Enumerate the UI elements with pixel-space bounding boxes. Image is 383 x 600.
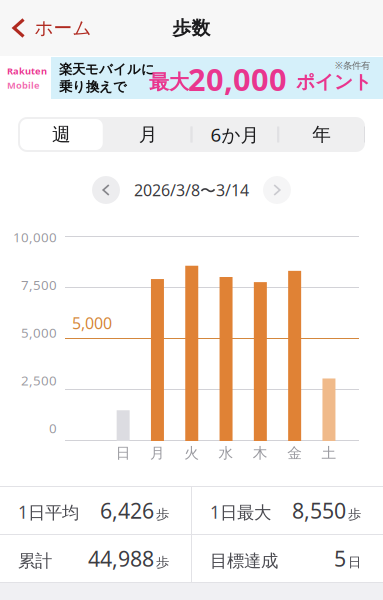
staticText: 20,000 <box>188 59 287 99</box>
button[interactable]: 累計 <box>0 535 191 582</box>
staticText: 水 <box>219 444 234 462</box>
staticText: 累計 <box>18 550 52 572</box>
staticText: 8,550 <box>292 496 346 525</box>
staticText: 月 <box>139 123 158 146</box>
staticText: ポイント <box>296 70 372 93</box>
button[interactable]: 年 <box>278 117 365 152</box>
staticText: Rakuten <box>7 65 47 77</box>
button[interactable]: 前の週 <box>92 176 120 204</box>
staticText: ※条件有 <box>335 59 370 71</box>
button[interactable]: 週 <box>18 117 105 152</box>
staticText: 歩 <box>156 506 169 522</box>
staticText: 木 <box>253 444 268 462</box>
staticText: 日 <box>348 554 361 570</box>
staticText: 5 <box>334 544 346 573</box>
staticText: 月 <box>150 444 165 462</box>
staticText: 6,426 <box>100 496 154 525</box>
staticText: 火 <box>184 444 199 462</box>
staticText: 5,000 <box>72 312 112 334</box>
staticText: 楽天モバイルに <box>59 61 155 77</box>
button[interactable]: ホーム <box>0 7 91 48</box>
staticText: Mobile <box>7 79 40 91</box>
staticText: 金 <box>287 444 302 462</box>
staticText: 2026/3/8〜3/14 <box>134 179 249 201</box>
staticText: 年 <box>312 123 331 146</box>
staticText: 1日平均 <box>18 500 79 523</box>
staticText: 10,000 <box>13 228 57 246</box>
button[interactable]: 6か月 <box>191 117 278 152</box>
staticText: 歩 <box>156 554 169 570</box>
button[interactable]: 1日平均 <box>0 487 191 534</box>
staticText: 目標達成 <box>210 550 278 572</box>
staticText: ホーム <box>34 16 91 39</box>
staticText: 日 <box>116 444 131 462</box>
staticText: 歩 <box>348 506 361 522</box>
staticText: 1日最大 <box>210 500 271 523</box>
staticText: 0 <box>49 419 57 437</box>
staticText: 乗り換えで <box>59 78 127 95</box>
staticText: 6か月 <box>210 122 259 147</box>
button[interactable]: 目標達成 <box>192 535 383 582</box>
staticText: 土 <box>321 444 336 462</box>
button[interactable]: 次の週 <box>263 176 291 204</box>
staticText: 最大 <box>149 70 189 94</box>
button[interactable]: 1日最大 <box>192 487 383 534</box>
button[interactable]: Rakuten <box>0 57 383 99</box>
staticText: 2,500 <box>21 371 57 389</box>
staticText: 7,500 <box>21 276 57 294</box>
staticText: 5,000 <box>21 324 57 341</box>
staticText: 歩数 <box>172 16 210 39</box>
staticText: 週 <box>52 123 71 146</box>
button[interactable]: 月 <box>105 117 192 152</box>
staticText: 44,988 <box>88 544 154 573</box>
